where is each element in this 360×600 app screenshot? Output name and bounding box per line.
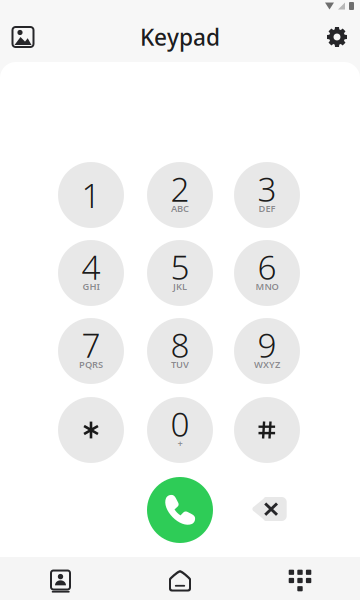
staticText: DEF — [258, 202, 275, 215]
button[interactable]: Contacts — [0, 557, 120, 600]
staticText: TUV — [171, 358, 189, 371]
staticText: 3 — [257, 167, 276, 211]
button[interactable]: Photos — [0, 14, 46, 60]
button[interactable]: 6 — [234, 240, 300, 306]
staticText: 7 — [81, 323, 100, 367]
button[interactable]: 7 — [58, 318, 124, 384]
button[interactable]: Delete — [245, 487, 293, 531]
staticText: 6 — [257, 245, 276, 289]
button[interactable]: 1 — [58, 162, 124, 228]
staticText: 8 — [170, 323, 189, 367]
button[interactable]: 8 — [147, 318, 213, 384]
button[interactable]: Keypad — [240, 557, 360, 600]
button[interactable]: 5 — [147, 240, 213, 306]
button[interactable] — [58, 397, 124, 463]
staticText: 2 — [170, 167, 189, 211]
staticText: MNO — [255, 280, 278, 293]
button[interactable]: Call — [147, 477, 213, 543]
button[interactable]: 2 — [147, 162, 213, 228]
button[interactable]: 3 — [234, 162, 300, 228]
staticText: 0 — [170, 402, 189, 446]
staticText: 5 — [170, 245, 189, 289]
button[interactable]: 0 — [147, 397, 213, 463]
button[interactable]: Recents — [120, 557, 240, 600]
staticText: WXYZ — [254, 358, 280, 371]
staticText: 9 — [257, 323, 276, 367]
button[interactable]: Settings — [314, 14, 360, 60]
staticText: + — [177, 437, 182, 450]
staticText: GHI — [82, 280, 99, 293]
staticText: 4 — [81, 245, 100, 289]
staticText: ABC — [171, 202, 189, 215]
staticText: JKL — [173, 280, 187, 293]
button[interactable]: 4 — [58, 240, 124, 306]
staticText: Keypad — [140, 22, 220, 52]
button[interactable]: 9 — [234, 318, 300, 384]
button[interactable] — [234, 397, 300, 463]
staticText: PQRS — [79, 358, 103, 371]
staticText: 1 — [81, 173, 100, 217]
